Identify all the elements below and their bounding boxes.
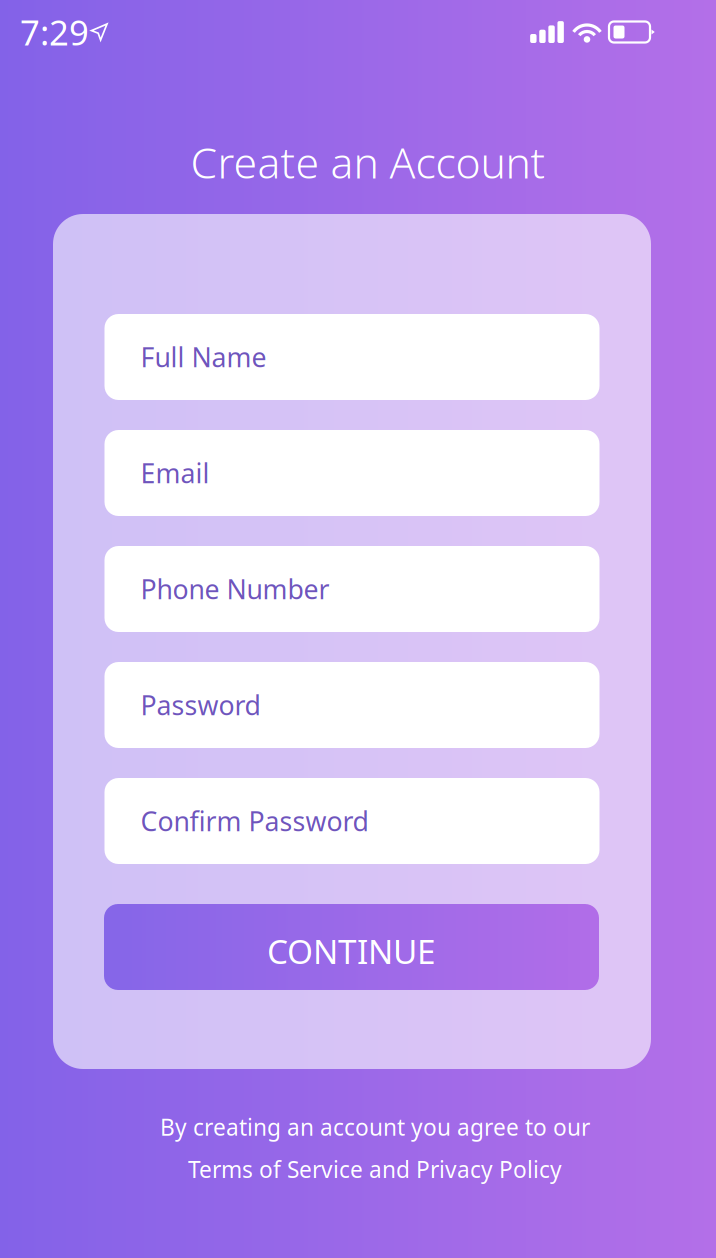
staticText: Full Name	[140, 339, 266, 375]
staticText: By creating an account you agree to our	[160, 1112, 590, 1142]
staticText: Confirm Password	[140, 803, 368, 839]
staticText: CONTINUE	[267, 929, 436, 973]
staticText: 7:29	[20, 9, 89, 55]
button[interactable]: CONTINUE	[104, 904, 599, 990]
staticText: Create an Account	[190, 134, 545, 190]
staticText: Email	[140, 455, 209, 491]
button[interactable]: Confirm Password	[104, 778, 599, 864]
button[interactable]: Email	[104, 430, 599, 516]
button[interactable]: Password	[104, 662, 599, 748]
staticText: Terms of Service and Privacy Policy	[188, 1154, 562, 1184]
button[interactable]: Phone Number	[104, 546, 599, 632]
staticText: Phone Number	[140, 571, 329, 607]
button[interactable]: Terms of Service and Privacy Policy	[188, 1154, 562, 1184]
staticText: Password	[140, 687, 260, 723]
button[interactable]: Full Name	[104, 314, 599, 400]
